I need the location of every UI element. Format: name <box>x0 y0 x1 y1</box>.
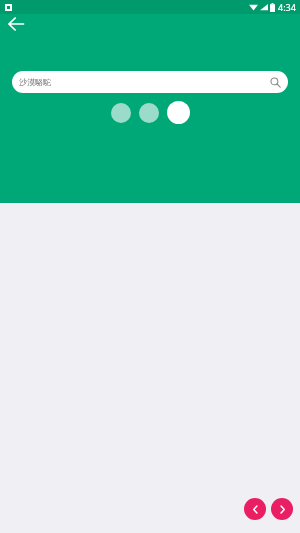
button[interactable]: Back <box>3 11 29 37</box>
button[interactable]: Previous <box>244 498 266 520</box>
button[interactable]: Search <box>268 75 283 90</box>
button[interactable]: Page 2 <box>139 103 159 123</box>
button[interactable]: Page 1 <box>111 103 131 123</box>
staticText: 沙漠駱駝 <box>19 77 51 87</box>
button[interactable]: 沙漠駱駝 <box>12 71 288 93</box>
staticText: 4:34 <box>278 1 296 13</box>
button[interactable]: Page 3 <box>167 101 190 124</box>
button[interactable]: Next <box>271 498 293 520</box>
